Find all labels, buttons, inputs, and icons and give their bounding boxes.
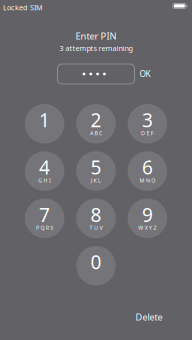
staticText: R <box>46 224 49 231</box>
staticText: 0 <box>90 249 101 275</box>
staticText: 2 <box>90 107 101 133</box>
button[interactable]: OK <box>134 64 156 84</box>
staticText: L <box>98 177 101 184</box>
staticText: 6 <box>142 154 153 180</box>
staticText: N <box>146 177 150 184</box>
staticText: O <box>151 177 155 184</box>
button[interactable]: 7 <box>25 199 64 238</box>
staticText: 4 <box>39 154 50 180</box>
staticText: 8 <box>90 201 101 227</box>
staticText: 3 <box>142 107 153 133</box>
button[interactable]: 6 <box>128 151 167 191</box>
button[interactable]: 5 <box>76 151 116 191</box>
staticText: Locked SIM <box>3 2 43 12</box>
staticText: H <box>44 177 48 184</box>
button[interactable]: 8 <box>76 199 116 238</box>
staticText: U <box>94 224 98 231</box>
button[interactable]: 4 <box>25 151 64 191</box>
button[interactable]: 2 <box>76 104 116 143</box>
staticText: J <box>91 177 92 184</box>
staticText: T <box>90 224 93 231</box>
button[interactable]: 3 <box>128 104 167 143</box>
staticText: Delete <box>135 311 162 323</box>
staticText: S <box>50 224 53 231</box>
staticText: I <box>49 177 51 184</box>
staticText: Z <box>153 224 156 231</box>
staticText: A <box>90 129 93 137</box>
staticText: M <box>139 177 144 184</box>
button[interactable]: Delete <box>127 308 171 326</box>
staticText: W <box>138 224 143 231</box>
staticText: Y <box>149 224 152 231</box>
staticText: G <box>38 177 42 184</box>
staticText: E <box>146 129 149 137</box>
staticText: P <box>36 224 39 231</box>
staticText: B <box>94 129 97 137</box>
staticText: 9 <box>142 201 153 227</box>
button[interactable]: 0 <box>76 246 116 285</box>
staticText: V <box>99 224 102 231</box>
staticText: Enter PIN <box>75 30 116 42</box>
staticText: Q <box>40 224 44 231</box>
staticText: 3 attempts remaining <box>59 43 132 53</box>
staticText: 5 <box>90 154 101 180</box>
staticText: C <box>99 129 102 137</box>
staticText: X <box>145 224 148 231</box>
staticText: F <box>151 129 154 137</box>
staticText: 7 <box>39 201 50 227</box>
button[interactable]: 9 <box>128 199 167 238</box>
staticText: OK <box>139 68 150 79</box>
button[interactable]: 1 <box>25 104 64 143</box>
staticText: 1 <box>39 107 50 133</box>
staticText: K <box>93 177 96 184</box>
staticText: D <box>141 129 145 137</box>
